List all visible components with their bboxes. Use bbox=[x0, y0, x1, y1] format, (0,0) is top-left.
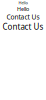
staticText: Contact Us bbox=[2, 21, 43, 32]
staticText: Hello bbox=[18, 0, 27, 5]
staticText: Hello bbox=[17, 5, 29, 12]
staticText: Contact Us bbox=[6, 12, 39, 21]
